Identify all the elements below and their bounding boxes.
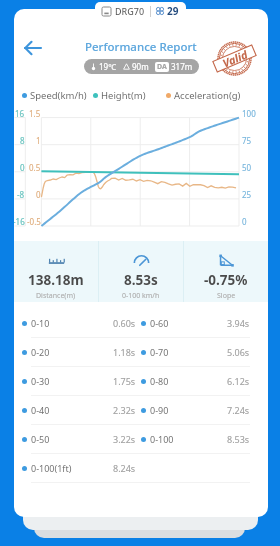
staticText: 0-10 bbox=[31, 317, 50, 329]
staticText: Performance Report bbox=[85, 39, 197, 55]
staticText: Distance(m) bbox=[36, 291, 76, 301]
staticText: Height(m) bbox=[101, 89, 146, 102]
staticText: 19℃ bbox=[99, 61, 117, 72]
staticText: 0-60 bbox=[150, 317, 169, 329]
button[interactable]: Speed(km/h) bbox=[22, 89, 87, 102]
staticText: 100 bbox=[242, 108, 256, 118]
staticText: 1.75s bbox=[113, 375, 136, 387]
button[interactable]: 0-20 bbox=[14, 338, 268, 366]
staticText: 0-40 bbox=[31, 404, 50, 416]
staticText: 6.12s bbox=[227, 375, 250, 387]
staticText: DA bbox=[157, 62, 167, 72]
staticText: 29 bbox=[167, 4, 179, 18]
staticText: 8 bbox=[20, 135, 25, 145]
staticText: 0-100 km/h bbox=[122, 291, 160, 301]
button[interactable]: 138.18m bbox=[14, 243, 98, 301]
button[interactable]: 0-50 bbox=[14, 425, 268, 453]
button[interactable]: 0-30 bbox=[14, 367, 268, 395]
staticText: 8.53s bbox=[124, 271, 158, 289]
staticText: 2.32s bbox=[113, 404, 136, 416]
button[interactable]: Height(m) bbox=[93, 89, 146, 102]
staticText: 1.18s bbox=[113, 346, 136, 358]
staticText: 0-70 bbox=[150, 346, 169, 358]
staticText: 0-100 bbox=[150, 433, 174, 445]
staticText: 317m bbox=[171, 61, 193, 72]
button[interactable]: 8.53s bbox=[99, 243, 183, 301]
staticText: 8.53s bbox=[227, 433, 250, 445]
button[interactable]: 0-40 bbox=[14, 396, 268, 424]
staticText: 3.94s bbox=[227, 317, 250, 329]
staticText: 75 bbox=[242, 135, 252, 145]
button[interactable]: DRG70 bbox=[102, 2, 179, 20]
staticText: 0-50 bbox=[31, 433, 50, 445]
staticText: 16 bbox=[15, 108, 25, 118]
button[interactable]: 0-100(1ft) bbox=[14, 454, 268, 482]
staticText: -8 bbox=[17, 189, 25, 199]
staticText: -0.5 bbox=[27, 216, 41, 226]
staticText: 7.24s bbox=[227, 404, 250, 416]
staticText: 0.5 bbox=[29, 162, 41, 172]
staticText: 8.24s bbox=[113, 462, 136, 474]
staticText: 0.60s bbox=[113, 317, 136, 329]
staticText: 0-100(1ft) bbox=[31, 462, 72, 474]
staticText: 0-20 bbox=[31, 346, 50, 358]
staticText: Speed(km/h) bbox=[30, 89, 87, 102]
staticText: 25 bbox=[242, 189, 252, 199]
staticText: 0-90 bbox=[150, 404, 169, 416]
staticText: -0.75% bbox=[204, 271, 248, 289]
button[interactable]: Acceleration(g) bbox=[166, 89, 241, 102]
staticText: 138.18m bbox=[28, 271, 84, 289]
staticText: Valid bbox=[220, 46, 250, 70]
staticText: 90m bbox=[132, 61, 149, 72]
staticText: 0 bbox=[20, 162, 25, 172]
staticText: -16 bbox=[14, 216, 25, 226]
staticText: 50 bbox=[242, 162, 252, 172]
button[interactable]: Back bbox=[19, 34, 47, 62]
staticText: 0 bbox=[242, 216, 247, 226]
button[interactable]: -0.75% bbox=[184, 243, 268, 301]
staticText: 1.5 bbox=[29, 108, 41, 118]
staticText: 0 bbox=[36, 189, 41, 199]
staticText: 0-30 bbox=[31, 375, 50, 387]
staticText: 3.22s bbox=[113, 433, 136, 445]
staticText: Acceleration(g) bbox=[174, 89, 241, 102]
staticText: 1 bbox=[36, 135, 41, 145]
staticText: DRG70 bbox=[115, 5, 145, 17]
button[interactable]: 0-10 bbox=[14, 309, 268, 337]
staticText: 5.06s bbox=[227, 346, 250, 358]
staticText: 0-80 bbox=[150, 375, 169, 387]
staticText: Slope bbox=[217, 291, 236, 301]
button[interactable]: 19℃ bbox=[90, 59, 193, 74]
